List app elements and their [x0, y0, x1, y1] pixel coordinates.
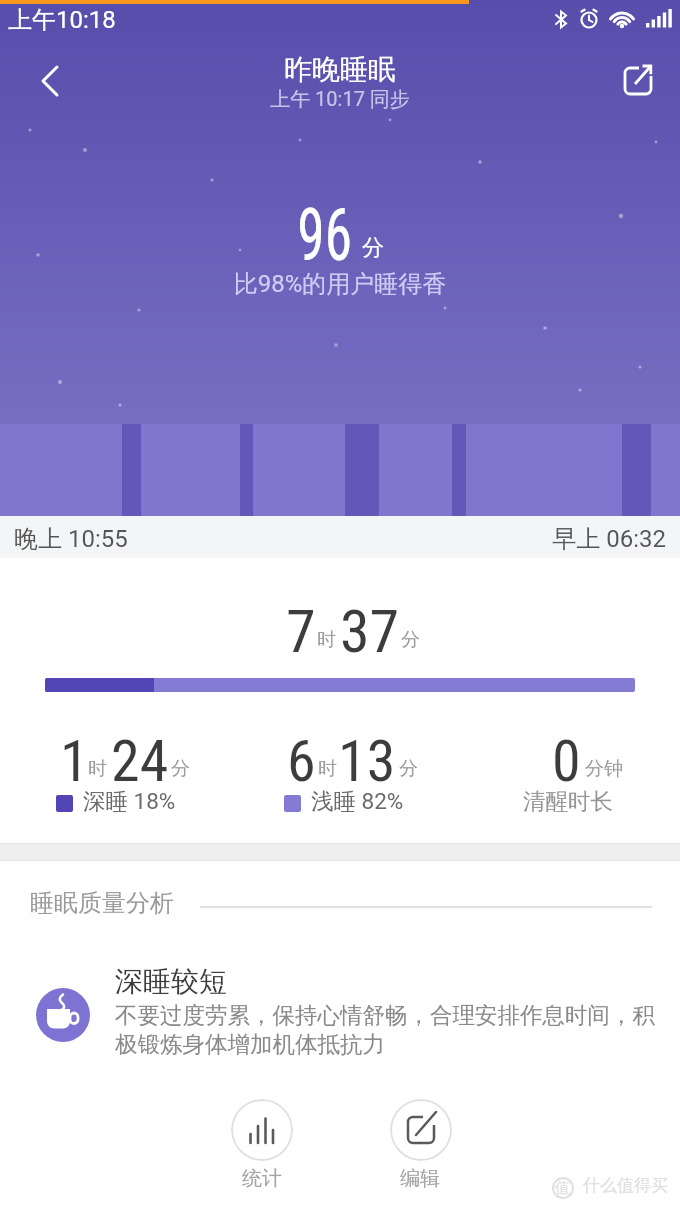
staticText: 早上 06:32: [0, 524, 666, 554]
staticText: 37: [340, 596, 400, 666]
staticText: 分: [171, 757, 190, 781]
button[interactable]: [612, 56, 664, 108]
staticText: 上午 10:17 同步: [0, 87, 680, 112]
staticText: 96: [297, 193, 353, 277]
staticText: 浅睡 82%: [311, 787, 404, 815]
staticText: 24: [111, 727, 169, 795]
staticText: 深睡 18%: [83, 787, 176, 815]
staticText: 深睡较短: [115, 964, 227, 999]
staticText: 0: [552, 727, 581, 795]
staticText: 编辑: [400, 1166, 440, 1191]
staticText: 7: [286, 596, 316, 666]
staticText: 时: [88, 757, 107, 781]
staticText: 不要过度劳累，保持心情舒畅，合理安排作息时间，积 极锻炼身体增加机体抵抗力: [115, 1001, 655, 1058]
staticText: 13: [338, 727, 396, 795]
staticText: 什么值得买: [583, 1175, 668, 1196]
staticText: 清醒时长: [523, 787, 613, 815]
staticText: 值: [555, 1179, 570, 1198]
staticText: 睡眠质量分析: [30, 888, 174, 918]
staticText: 1: [60, 727, 89, 795]
button[interactable]: [28, 52, 72, 108]
staticText: 时: [317, 628, 336, 652]
staticText: 分: [362, 234, 384, 262]
button[interactable]: [231, 1099, 293, 1161]
staticText: 比98%的用户睡得香: [0, 269, 680, 299]
staticText: 时: [318, 757, 337, 781]
button[interactable]: [390, 1099, 452, 1161]
staticText: 分: [399, 757, 418, 781]
staticText: 上午10:18: [8, 5, 116, 35]
staticText: 6: [287, 727, 316, 795]
staticText: 晚上 10:55: [14, 524, 128, 554]
staticText: 统计: [242, 1166, 282, 1191]
staticText: 昨晚睡眠: [0, 52, 680, 87]
staticText: 分: [401, 628, 420, 652]
staticText: 分钟: [585, 757, 623, 781]
